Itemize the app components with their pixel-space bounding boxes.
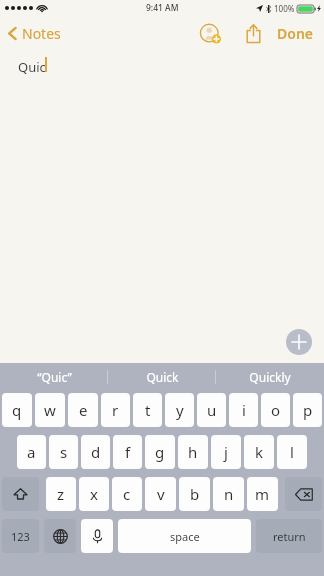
- staticText: y: [176, 400, 184, 420]
- staticText: 123: [11, 529, 30, 544]
- button[interactable]: f: [113, 435, 142, 469]
- staticText: space: [170, 529, 200, 544]
- button[interactable]: w: [35, 393, 65, 427]
- button[interactable]: l: [277, 435, 307, 469]
- button[interactable]: y: [165, 393, 194, 427]
- button[interactable]: 123: [2, 519, 39, 553]
- button[interactable]: j: [211, 435, 241, 469]
- button[interactable]: Switch keyboard: [44, 519, 76, 553]
- staticText: t: [145, 400, 151, 420]
- button[interactable]: e: [68, 393, 98, 427]
- staticText: j: [224, 442, 228, 462]
- button[interactable]: p: [293, 393, 322, 427]
- staticText: Quic: [18, 58, 46, 76]
- button[interactable]: o: [261, 393, 290, 427]
- button[interactable]: space: [118, 519, 251, 553]
- button[interactable]: Dictate: [81, 519, 113, 553]
- staticText: i: [242, 400, 246, 420]
- staticText: n: [224, 484, 234, 504]
- staticText: Quickly: [249, 369, 291, 385]
- staticText: h: [188, 442, 198, 462]
- staticText: u: [207, 400, 217, 420]
- button[interactable]: Add: [286, 329, 312, 355]
- staticText: f: [125, 442, 131, 462]
- staticText: l: [290, 442, 294, 462]
- button[interactable]: Done: [277, 24, 314, 43]
- staticText: k: [255, 442, 264, 462]
- staticText: v: [157, 484, 165, 504]
- button[interactable]: Quick: [108, 363, 216, 390]
- button[interactable]: g: [145, 435, 175, 469]
- staticText: e: [79, 400, 88, 420]
- button[interactable]: u: [197, 393, 226, 427]
- button[interactable]: d: [81, 435, 110, 469]
- staticText: p: [303, 400, 313, 420]
- staticText: q: [12, 400, 22, 420]
- staticText: “Quic”: [37, 369, 72, 385]
- button[interactable]: v: [145, 477, 176, 511]
- button[interactable]: Quickly: [216, 363, 324, 390]
- staticText: c: [123, 484, 131, 504]
- button[interactable]: b: [179, 477, 210, 511]
- staticText: a: [27, 442, 36, 462]
- button[interactable]: i: [229, 393, 258, 427]
- button[interactable]: t: [133, 393, 162, 427]
- staticText: Quick: [146, 369, 179, 385]
- button[interactable]: q: [2, 393, 32, 427]
- staticText: g: [155, 442, 165, 462]
- button[interactable]: m: [247, 477, 278, 511]
- staticText: Notes: [22, 24, 61, 43]
- staticText: 9:41 AM: [146, 2, 179, 14]
- staticText: z: [57, 484, 65, 504]
- button[interactable]: Notes: [8, 24, 61, 43]
- button[interactable]: Add People: [197, 20, 223, 46]
- staticText: o: [271, 400, 281, 420]
- button[interactable]: x: [79, 477, 109, 511]
- staticText: b: [190, 484, 200, 504]
- button[interactable]: Share: [241, 21, 265, 45]
- button[interactable]: r: [101, 393, 130, 427]
- button[interactable]: a: [17, 435, 46, 469]
- staticText: x: [90, 484, 98, 504]
- staticText: d: [91, 442, 101, 462]
- staticText: s: [60, 442, 68, 462]
- button[interactable]: z: [46, 477, 76, 511]
- button[interactable]: k: [244, 435, 274, 469]
- staticText: r: [112, 400, 119, 420]
- staticText: m: [255, 484, 270, 504]
- button[interactable]: h: [178, 435, 208, 469]
- button[interactable]: s: [49, 435, 78, 469]
- button[interactable]: Backspace: [285, 477, 322, 511]
- button[interactable]: return: [256, 519, 322, 553]
- button[interactable]: “Quic”: [0, 363, 108, 390]
- staticText: w: [44, 400, 56, 420]
- staticText: 100%: [274, 3, 295, 14]
- staticText: Done: [277, 24, 314, 43]
- button[interactable]: c: [112, 477, 142, 511]
- button[interactable]: Shift: [2, 477, 39, 511]
- staticText: return: [273, 529, 306, 544]
- button[interactable]: n: [213, 477, 244, 511]
